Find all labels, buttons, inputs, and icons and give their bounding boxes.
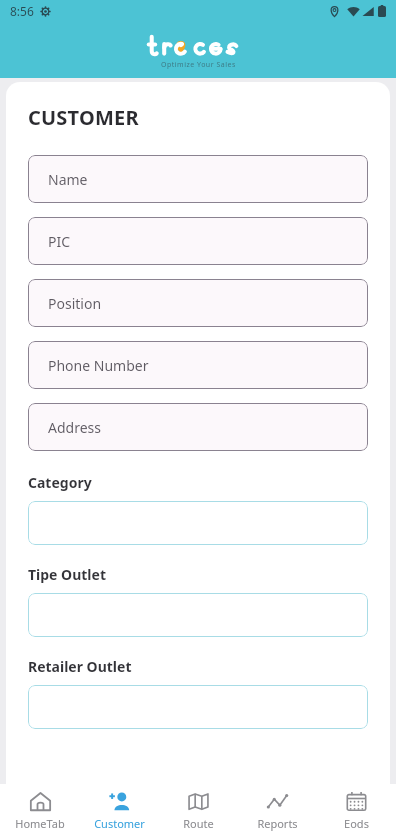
button[interactable]: Name [28,155,368,203]
staticText: Customer [94,816,145,831]
button[interactable]: Customer [80,784,159,836]
staticText: Retailer Outlet [28,657,132,676]
button[interactable]: HomeTab [0,784,80,836]
staticText: Reports [257,816,298,831]
button[interactable]: Reports [238,784,317,836]
button[interactable]: Eods [317,784,396,836]
button[interactable]: Route [159,784,238,836]
staticText: Tipe Outlet [28,565,106,584]
staticText: Name [48,170,88,189]
button[interactable]: PIC [28,217,368,265]
button[interactable]: Position [28,279,368,327]
staticText: Phone Number [48,356,149,375]
button[interactable] [28,501,368,545]
button[interactable]: Phone Number [28,341,368,389]
staticText: Category [28,473,92,492]
button[interactable] [28,685,368,729]
staticText: 8:56 [10,3,34,19]
staticText: Eods [344,816,369,831]
staticText: Position [48,294,102,313]
button[interactable]: Address [28,403,368,451]
staticText: PIC [48,232,71,251]
button[interactable] [28,593,368,637]
staticText: Address [48,418,101,437]
staticText: Optimize Your Sales [161,60,236,70]
staticText: HomeTab [15,816,65,831]
staticText: CUSTOMER [28,104,139,131]
staticText: Route [183,816,214,831]
